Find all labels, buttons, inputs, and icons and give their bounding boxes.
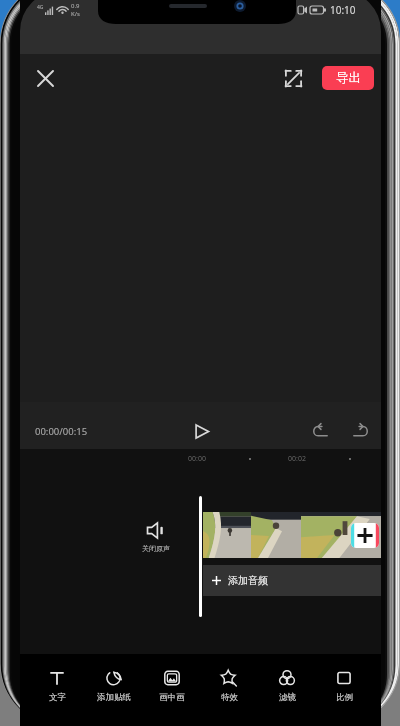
button[interactable]: 导出 [322,66,374,90]
button[interactable]: Add clip [351,523,379,548]
staticText: 00:00/00:15 [35,425,88,438]
button[interactable]: 滤镜 [259,654,315,703]
button[interactable]: Redo [348,418,374,444]
button[interactable]: 文字 [29,654,85,703]
staticText: 00:02 [288,454,306,464]
staticText: 00:00 [188,454,206,464]
button[interactable]: 关闭原声 [133,521,178,553]
button[interactable] [203,512,251,558]
button[interactable] [251,512,301,558]
staticText: 0.9 [71,2,80,10]
button[interactable]: 添加音频 [203,565,381,596]
staticText: 滤镜 [279,692,296,703]
staticText: 画中画 [159,692,185,703]
staticText: 关闭原声 [142,544,170,553]
button[interactable]: Fullscreen [279,64,308,93]
button[interactable]: 画中画 [144,654,200,703]
button[interactable]: 特效 [201,654,257,703]
staticText: K/s [71,10,80,18]
button[interactable]: Undo [307,418,333,444]
button[interactable]: Close [31,64,59,92]
staticText: 比例 [336,692,353,703]
staticText: 导出 [336,70,361,86]
button[interactable] [301,512,381,558]
staticText: 添加音频 [228,574,268,587]
staticText: 特效 [221,692,238,703]
button[interactable]: Play [188,418,214,444]
staticText: 添加贴纸 [97,692,131,703]
staticText: 4G [37,4,44,11]
staticText: 10:10 [330,3,356,17]
button[interactable]: 比例 [316,654,372,703]
button[interactable]: 添加贴纸 [86,654,142,703]
staticText: 文字 [49,692,66,703]
